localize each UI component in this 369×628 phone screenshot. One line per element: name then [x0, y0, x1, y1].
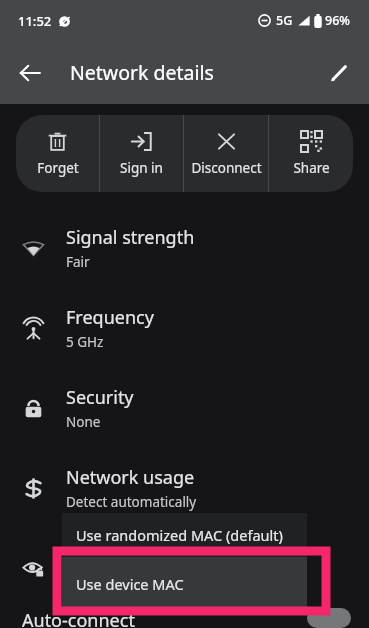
staticText: Network details — [70, 59, 214, 86]
staticText: Forget — [37, 159, 79, 177]
staticText: Detect automatically — [66, 493, 197, 511]
staticText: 96% — [325, 12, 350, 29]
button[interactable]: Use device MAC — [62, 557, 307, 611]
button[interactable]: Use randomized MAC (default) — [62, 513, 307, 557]
staticText: Frequency — [66, 305, 154, 330]
staticText: Signal strength — [66, 225, 195, 250]
button[interactable]: Disconnect — [184, 115, 268, 192]
button[interactable]: Sign in — [100, 115, 183, 192]
button[interactable]: Share — [269, 115, 353, 192]
button[interactable]: Forget — [16, 115, 99, 192]
staticText: Use device MAC — [76, 574, 184, 594]
button[interactable]: Edit — [315, 49, 363, 97]
button[interactable]: Frequency — [0, 288, 369, 368]
staticText: Sign in — [120, 159, 163, 177]
staticText: Fair — [66, 253, 90, 271]
staticText: Share — [293, 159, 330, 177]
staticText: None — [66, 413, 101, 431]
staticText: Disconnect — [191, 159, 262, 177]
staticText: 11:52 — [18, 12, 52, 30]
button[interactable]: Security — [0, 368, 369, 448]
button[interactable]: Back — [6, 49, 54, 97]
staticText: 5 GHz — [66, 333, 104, 351]
button[interactable] — [0, 528, 369, 608]
staticText: Network usage — [66, 465, 195, 490]
staticText: Use randomized MAC (default) — [76, 525, 283, 545]
staticText: Auto-connect — [22, 608, 135, 628]
button[interactable]: Network usage — [0, 448, 369, 528]
button[interactable]: Auto-connect — [0, 608, 369, 628]
button[interactable]: Signal strength — [0, 208, 369, 288]
staticText: 5G — [276, 12, 293, 29]
staticText: Security — [66, 385, 134, 410]
